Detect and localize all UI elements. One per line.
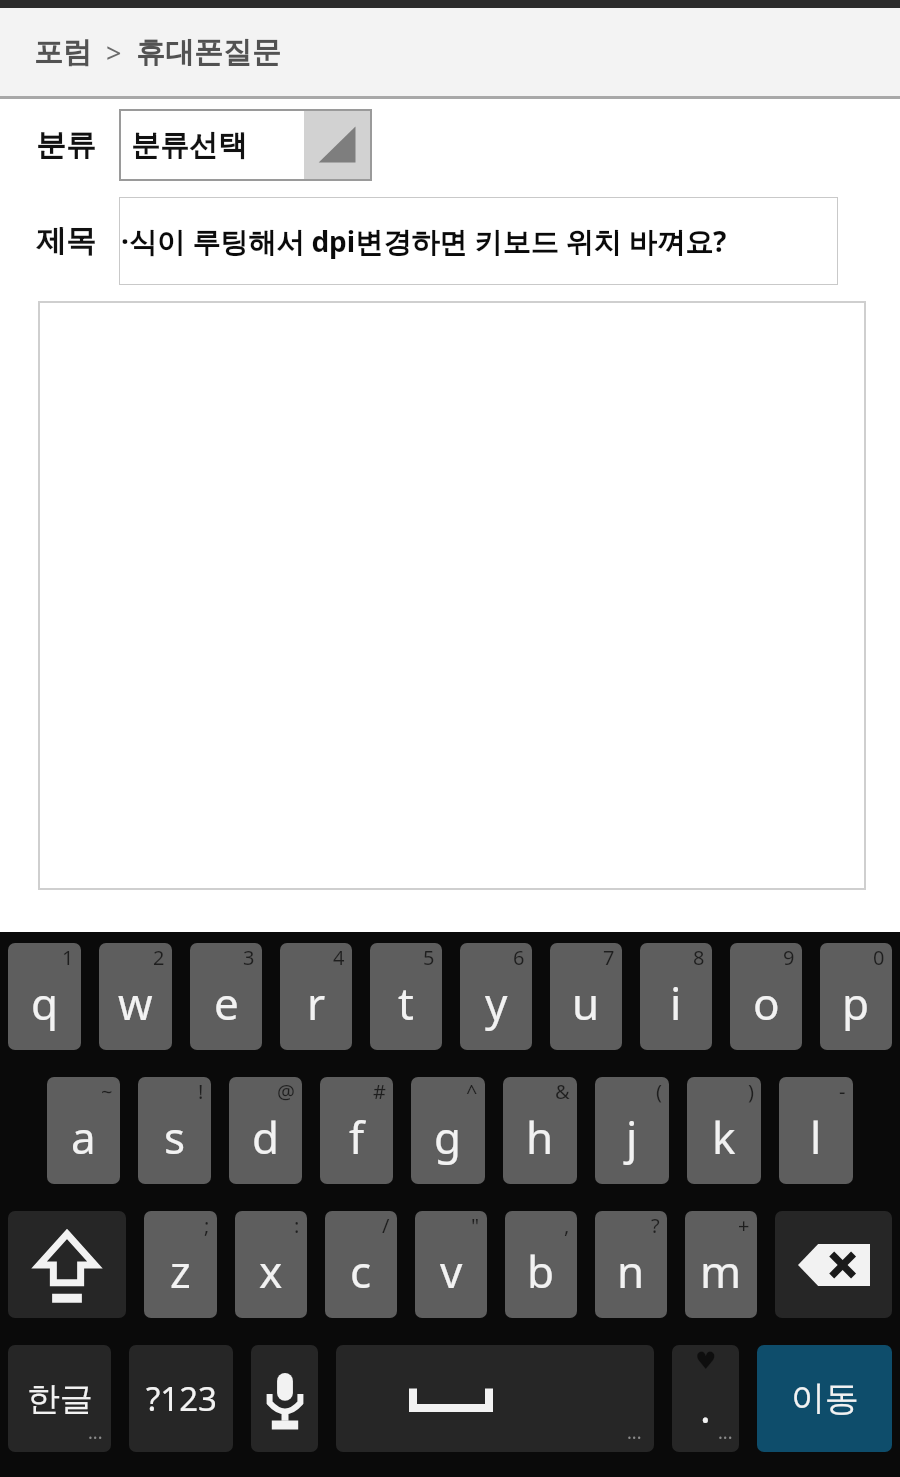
button[interactable]: 8: [640, 943, 712, 1050]
button[interactable]: (: [595, 1077, 669, 1184]
button[interactable]: 포럼: [0, 8, 900, 96]
staticText: ": [471, 1212, 480, 1239]
button[interactable]: ": [415, 1211, 487, 1318]
button[interactable]: Voice input: [251, 1345, 318, 1452]
staticText: 3: [243, 944, 255, 971]
button[interactable]: 9: [730, 943, 802, 1050]
staticText: s: [164, 1107, 186, 1167]
staticText: i: [670, 973, 682, 1033]
staticText: 분류선택: [131, 127, 247, 164]
button[interactable]: +: [685, 1211, 757, 1318]
button[interactable]: 1: [8, 943, 81, 1050]
staticText: r: [307, 973, 326, 1033]
button[interactable]: -: [779, 1077, 853, 1184]
button[interactable]: /: [325, 1211, 397, 1318]
staticText: n: [617, 1241, 645, 1301]
button[interactable]: 7: [550, 943, 622, 1050]
staticText: .: [700, 1380, 711, 1434]
staticText: m: [700, 1241, 742, 1301]
staticText: 4: [333, 944, 345, 971]
staticText: q: [31, 973, 59, 1033]
staticText: #: [373, 1078, 386, 1105]
staticText: u: [572, 973, 600, 1033]
staticText: t: [398, 973, 414, 1033]
button[interactable]: 6: [460, 943, 532, 1050]
staticText: 이동: [791, 1377, 859, 1420]
staticText: b: [527, 1241, 555, 1301]
button[interactable]: ~: [47, 1077, 120, 1184]
staticText: &: [555, 1078, 570, 1105]
staticText: 1: [62, 944, 74, 971]
staticText: k: [712, 1107, 736, 1167]
staticText: 0: [873, 944, 885, 971]
staticText: v: [440, 1241, 463, 1301]
button[interactable]: 3: [190, 943, 262, 1050]
button[interactable]: ): [687, 1077, 761, 1184]
staticText: (: [656, 1078, 662, 1105]
button[interactable]: ?123: [129, 1345, 233, 1452]
button[interactable]: Shift: [8, 1211, 126, 1318]
button[interactable]: ;: [144, 1211, 217, 1318]
button[interactable]: ♥: [672, 1345, 739, 1452]
staticText: j: [626, 1107, 638, 1167]
button[interactable]: ·식이 루팅해서 dpi변경하면 키보드 위치 바껴요?: [119, 197, 838, 285]
staticText: ): [748, 1078, 754, 1105]
staticText: @: [277, 1078, 295, 1105]
staticText: y: [485, 973, 508, 1033]
staticText: 포럼: [34, 34, 92, 71]
staticText: o: [753, 973, 780, 1033]
staticText: >: [92, 34, 136, 71]
staticText: c: [350, 1241, 372, 1301]
staticText: 8: [693, 944, 705, 971]
staticText: h: [526, 1107, 554, 1167]
button[interactable]: [38, 301, 866, 890]
staticText: ···: [718, 1425, 733, 1450]
staticText: 한글: [27, 1378, 93, 1420]
button[interactable]: Space: [336, 1345, 654, 1452]
button[interactable]: Delete: [775, 1211, 892, 1318]
staticText: e: [214, 973, 239, 1033]
button[interactable]: 한글: [8, 1345, 111, 1452]
button[interactable]: 2: [99, 943, 172, 1050]
staticText: !: [198, 1078, 204, 1105]
staticText: 제목: [36, 222, 96, 260]
staticText: z: [170, 1241, 191, 1301]
staticText: +: [738, 1212, 750, 1239]
staticText: w: [118, 973, 153, 1033]
button[interactable]: :: [235, 1211, 307, 1318]
button[interactable]: 분류선택: [119, 109, 372, 181]
button[interactable]: &: [503, 1077, 577, 1184]
button[interactable]: 0: [820, 943, 892, 1050]
staticText: ^: [466, 1078, 478, 1105]
staticText: 6: [513, 944, 525, 971]
staticText: ?: [651, 1212, 660, 1239]
button[interactable]: 5: [370, 943, 442, 1050]
button[interactable]: !: [138, 1077, 211, 1184]
staticText: a: [71, 1107, 96, 1167]
staticText: ···: [88, 1425, 103, 1450]
staticText: ,: [564, 1212, 570, 1239]
button[interactable]: ,: [505, 1211, 577, 1318]
staticText: 9: [783, 944, 795, 971]
button[interactable]: @: [229, 1077, 302, 1184]
staticText: ·식이 루팅해서 dpi변경하면 키보드 위치 바껴요?: [121, 222, 727, 260]
staticText: l: [810, 1107, 822, 1167]
staticText: p: [842, 973, 870, 1033]
staticText: d: [252, 1107, 280, 1167]
button[interactable]: #: [320, 1077, 393, 1184]
staticText: ;: [204, 1212, 210, 1239]
button[interactable]: 4: [280, 943, 352, 1050]
staticText: ~: [101, 1078, 113, 1105]
button[interactable]: ?: [595, 1211, 667, 1318]
staticText: 5: [423, 944, 435, 971]
staticText: /: [382, 1212, 390, 1239]
staticText: ···: [627, 1425, 642, 1450]
staticText: g: [434, 1107, 462, 1167]
staticText: 분류: [36, 126, 96, 164]
button[interactable]: ^: [411, 1077, 485, 1184]
staticText: 휴대폰질문: [136, 34, 281, 71]
staticText: :: [294, 1212, 300, 1239]
button[interactable]: 이동: [757, 1345, 892, 1452]
staticText: -: [839, 1078, 846, 1105]
staticText: ♥: [695, 1347, 717, 1375]
